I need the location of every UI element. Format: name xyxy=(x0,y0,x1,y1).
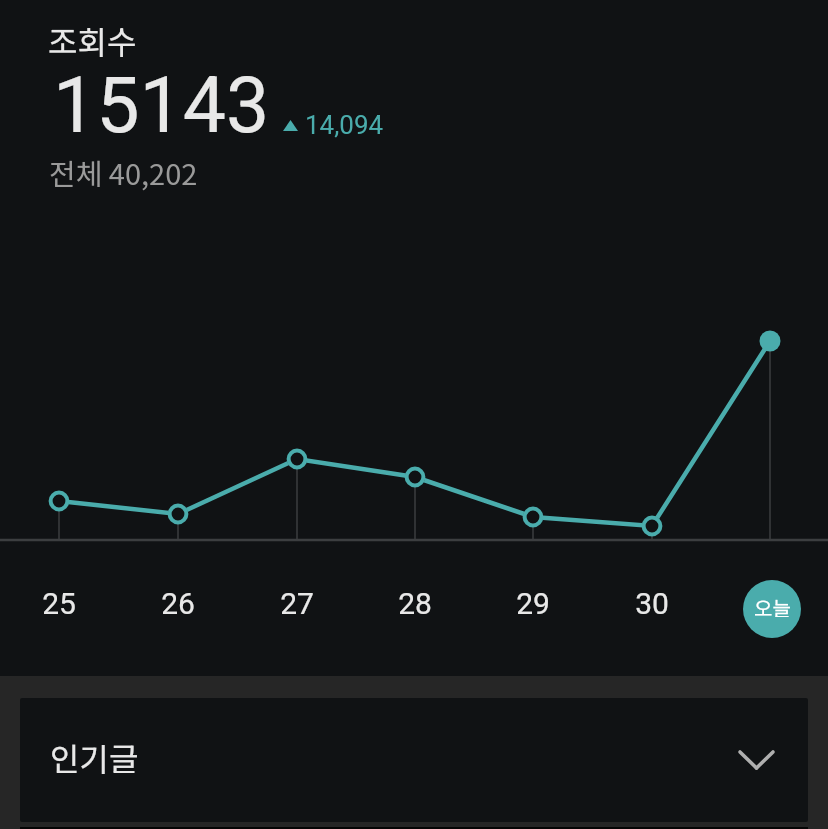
staticText: 15143 xyxy=(53,61,270,151)
staticText: 28 xyxy=(398,586,432,621)
button[interactable]: 26 xyxy=(143,580,213,626)
staticText: 25 xyxy=(42,586,76,621)
other: Expand xyxy=(740,752,773,768)
button[interactable]: 27 xyxy=(262,580,332,626)
staticText: 30 xyxy=(635,586,669,621)
button[interactable]: 25 xyxy=(24,580,94,626)
staticText: 29 xyxy=(516,586,550,621)
staticText: 26 xyxy=(161,586,195,621)
button[interactable]: 인기글 xyxy=(20,698,808,822)
button[interactable]: 28 xyxy=(380,580,450,626)
staticText: 인기글 xyxy=(50,734,139,780)
staticText: 조회수 xyxy=(48,17,137,63)
button[interactable]: 30 xyxy=(617,580,687,626)
staticText: 14,094 xyxy=(305,110,384,140)
button[interactable]: 오늘 xyxy=(743,580,801,638)
other: Increase xyxy=(283,120,298,131)
staticText: 오늘 xyxy=(754,593,791,622)
staticText: 27 xyxy=(280,586,314,621)
staticText: 전체 40,202 xyxy=(49,151,198,193)
button[interactable]: 29 xyxy=(498,580,568,626)
